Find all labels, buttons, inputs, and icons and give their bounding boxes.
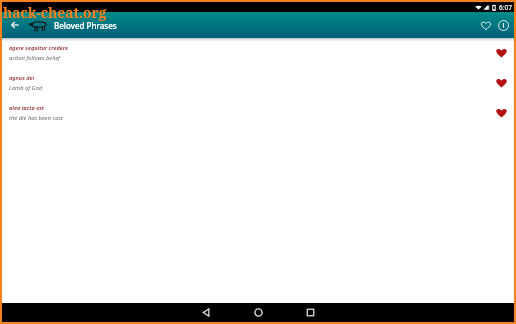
button[interactable]: alea iacta est (2, 98, 514, 128)
button[interactable]: About (493, 12, 514, 38)
staticText: 6:07 (499, 3, 513, 12)
button[interactable]: Toggle favourite (489, 38, 513, 68)
staticText: hack-cheat.org (3, 3, 107, 22)
button[interactable]: agere sequitur credere (2, 38, 514, 68)
staticText: alea iacta est (9, 104, 45, 111)
button[interactable]: Back (191, 303, 221, 322)
staticText: agere sequitur credere (9, 44, 69, 51)
button[interactable]: agnus dei (2, 68, 514, 98)
button[interactable]: Home (243, 303, 273, 322)
button[interactable]: Toggle favourite (489, 98, 513, 128)
staticText: agnus dei (9, 74, 35, 81)
button[interactable]: Show favourites (472, 12, 493, 38)
button[interactable]: Navigate up (2, 13, 26, 37)
button[interactable]: Recent apps (295, 303, 325, 322)
staticText: Beloved Phrases (54, 20, 117, 31)
staticText: the die has been cast (9, 114, 63, 122)
staticText: action follows belief (9, 54, 60, 62)
button[interactable]: Toggle favourite (489, 68, 513, 98)
staticText: Lamb of God (9, 84, 43, 92)
